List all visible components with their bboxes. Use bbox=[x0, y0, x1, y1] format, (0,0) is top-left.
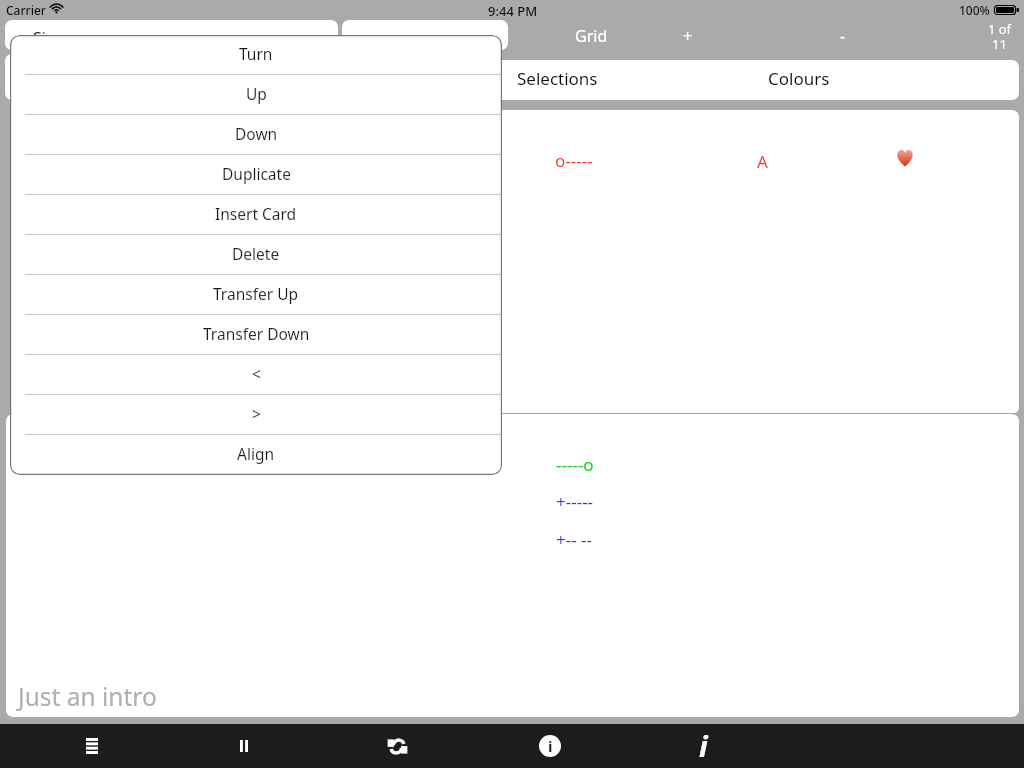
button[interactable]: Remove bbox=[823, 24, 863, 48]
staticText: Transfer Down bbox=[203, 323, 310, 344]
button[interactable]: Transfer Up bbox=[10, 275, 502, 315]
button[interactable]: Size bbox=[5, 20, 338, 50]
staticText: + bbox=[683, 25, 693, 47]
button[interactable]: List bbox=[70, 724, 114, 768]
staticText: 9:44 PM bbox=[488, 2, 538, 20]
staticText: Up bbox=[246, 83, 267, 104]
button[interactable]: Grid bbox=[556, 24, 626, 48]
staticText: A bbox=[757, 150, 768, 173]
button[interactable]: Delete bbox=[10, 235, 502, 275]
staticText: Delete bbox=[232, 243, 280, 264]
staticText: Colours bbox=[768, 67, 830, 90]
button[interactable]: Page 1 of 11 bbox=[960, 20, 1024, 58]
staticText: i bbox=[548, 736, 553, 756]
button[interactable]: Duplicate bbox=[10, 155, 502, 195]
button[interactable]: Italic bbox=[681, 724, 725, 768]
staticText: i bbox=[699, 726, 708, 765]
button[interactable]: Card editor bbox=[5, 54, 338, 100]
button[interactable]: Info bbox=[528, 724, 572, 768]
staticText: Turn bbox=[239, 43, 273, 64]
staticText: Just an intro bbox=[18, 680, 157, 713]
staticText: +-- -- bbox=[556, 528, 593, 551]
button[interactable]: Pause bbox=[222, 724, 266, 768]
staticText: Selections bbox=[517, 67, 598, 90]
staticText: -----o bbox=[556, 453, 594, 476]
button[interactable]: Selections bbox=[502, 60, 752, 100]
button[interactable]: Add bbox=[668, 24, 708, 48]
staticText: > bbox=[252, 403, 261, 424]
button[interactable]: Card options bbox=[342, 20, 508, 50]
staticText: Down bbox=[235, 123, 278, 144]
button[interactable]: Refresh bbox=[375, 724, 419, 768]
staticText: Duplicate bbox=[222, 163, 291, 184]
button[interactable]: Transfer Down bbox=[10, 315, 502, 355]
button[interactable]: Down bbox=[10, 115, 502, 155]
button[interactable]: Colours bbox=[752, 60, 1019, 100]
staticText: Insert Card bbox=[215, 203, 297, 224]
staticText: Size bbox=[33, 27, 63, 49]
staticText: Transfer Up bbox=[213, 283, 299, 304]
staticText: < bbox=[252, 363, 261, 384]
button[interactable]: < bbox=[10, 355, 502, 395]
button[interactable]: Insert Card bbox=[10, 195, 502, 235]
button[interactable]: Align bbox=[10, 435, 502, 475]
staticText: Grid bbox=[575, 25, 608, 47]
button[interactable]: Up bbox=[10, 75, 502, 115]
staticText: o----- bbox=[555, 149, 593, 172]
staticText: 100% bbox=[959, 2, 990, 18]
staticText: +----- bbox=[556, 490, 594, 513]
staticText: - bbox=[840, 25, 846, 47]
button[interactable]: > bbox=[10, 395, 502, 435]
staticText: Align bbox=[237, 443, 275, 464]
button[interactable]: Turn bbox=[10, 35, 502, 75]
staticText: Carrier bbox=[6, 2, 46, 18]
staticText: 1 of 11 bbox=[960, 20, 1024, 53]
